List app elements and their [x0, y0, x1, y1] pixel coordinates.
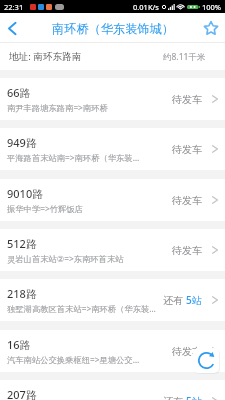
staticText: 0.01K/s — [133, 2, 159, 12]
staticText: 218路 — [7, 286, 37, 301]
button[interactable]: 512路 — [0, 229, 225, 271]
staticText: 5站 — [186, 293, 202, 307]
staticText: 南环桥（华东装饰城） — [52, 21, 174, 36]
staticText: 待发车 — [172, 244, 202, 257]
staticText: 还有 — [163, 394, 186, 400]
staticText: 还有 — [163, 293, 186, 307]
staticText: 5站 — [186, 394, 202, 400]
button[interactable]: 66路 — [0, 78, 225, 120]
button[interactable]: 207路 — [0, 380, 225, 400]
staticText: 待发车 — [172, 143, 202, 156]
button[interactable]: 9010路 — [0, 179, 225, 221]
staticText: 独墅湖高教区首末站=>南环桥（华东装… — [7, 303, 156, 314]
staticText: 100% — [202, 2, 222, 12]
staticText: 9010路 — [7, 186, 44, 201]
staticText: 灵岩山首末站②=>东南环首末站 — [7, 253, 124, 264]
button[interactable]: Favorite — [197, 13, 225, 43]
staticText: 待发车 — [172, 194, 202, 207]
button[interactable]: Refresh — [193, 348, 219, 373]
staticText: 512路 — [7, 236, 37, 251]
button[interactable]: 218路 — [0, 279, 225, 321]
staticText: 振华中学=>竹辉饭店 — [7, 203, 83, 214]
staticText: 66路 — [7, 85, 31, 100]
staticText: 待发车 — [172, 93, 202, 106]
button[interactable]: 949路 — [0, 128, 225, 170]
staticText: 待发车 — [172, 345, 202, 358]
staticText: 南尹丰路塘东路南=>南环桥 — [7, 102, 108, 113]
button[interactable]: Back — [0, 13, 24, 43]
staticText: 22:31 — [4, 2, 24, 12]
button[interactable]: 16路 — [0, 330, 225, 372]
staticText: 地址: 南环东路南 — [9, 50, 82, 63]
staticText: 约8.11千米 — [163, 51, 206, 63]
staticText: 207路 — [7, 387, 37, 400]
staticText: 949路 — [7, 135, 37, 150]
staticText: 平海路首末站南=>南环桥（华东装… — [7, 152, 140, 163]
staticText: 16路 — [7, 337, 31, 352]
staticText: 汽车南站公交换乘枢纽=>星塘公交… — [7, 354, 140, 365]
